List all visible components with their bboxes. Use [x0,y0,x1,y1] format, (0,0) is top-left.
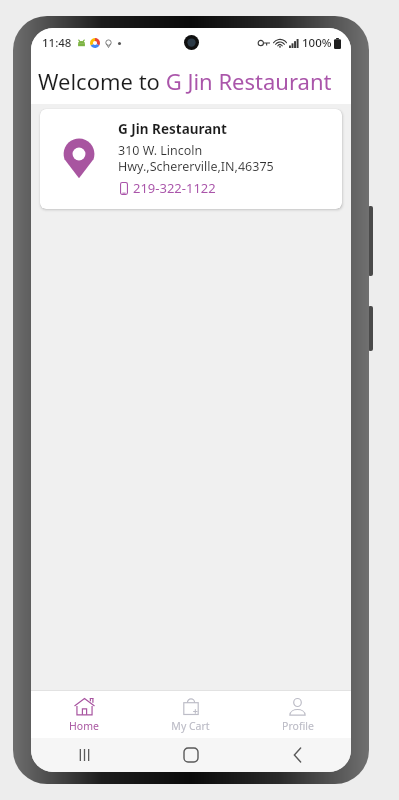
staticText: Profile [282,719,314,733]
staticText: 11:48 [42,35,72,51]
staticText: 100% [302,35,332,51]
button[interactable]: My Cart [137,691,244,738]
staticText: My Cart [171,719,210,733]
staticText: G Jin Restaurant [118,120,227,138]
button[interactable]: Back [244,738,351,772]
staticText: Home [69,719,99,733]
staticText: Welcome to G Jin Restaurant [38,66,332,96]
staticText: 310 W. Lincoln Hwy.,Schererville,IN,4637… [118,142,274,174]
button[interactable]: Profile [244,691,351,738]
button[interactable]: 219-322-1122 [118,178,220,198]
button[interactable]: Home [137,738,244,772]
button[interactable]: Recent apps [31,738,137,772]
button[interactable]: Home [31,691,137,738]
button[interactable]: G Jin Restaurant [40,109,342,209]
staticText: 219-322-1122 [133,179,216,197]
